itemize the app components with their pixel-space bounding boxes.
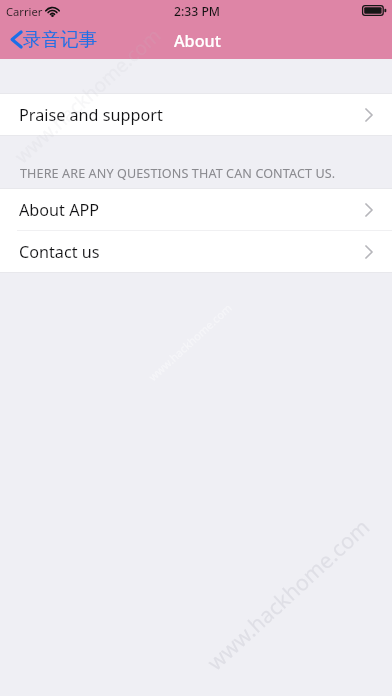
other: Battery full (362, 5, 387, 16)
button[interactable]: Praise and support (0, 94, 392, 135)
other: Wi-Fi (46, 6, 59, 16)
staticText: About APP (19, 199, 100, 221)
staticText: About (174, 30, 221, 52)
button[interactable]: 录音记事 (0, 25, 108, 56)
staticText: THERE ARE ANY QUESTIONS THAT CAN CONTACT… (20, 165, 336, 182)
staticText: 2:33 PM (174, 3, 221, 20)
staticText: 录音记事 (23, 28, 98, 51)
staticText: Carrier (6, 4, 43, 19)
button[interactable]: Contact us (0, 231, 392, 272)
staticText: Praise and support (19, 104, 163, 126)
button[interactable]: About APP (0, 189, 392, 230)
staticText: Contact us (19, 241, 100, 263)
